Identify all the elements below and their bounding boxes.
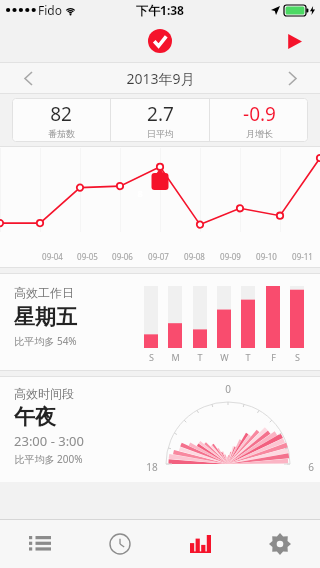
staticText: S — [295, 351, 300, 363]
button[interactable]: Pomodoro — [140, 21, 180, 61]
button[interactable]: Statistics — [160, 519, 240, 568]
staticText: F — [271, 351, 276, 363]
staticText: 09-11 — [292, 251, 313, 262]
staticText: 番茄数 — [48, 128, 75, 139]
staticText: 09-08 — [184, 251, 205, 262]
button[interactable]: List — [0, 519, 80, 568]
button[interactable]: 高效时间段 — [0, 376, 320, 482]
staticText: W — [220, 351, 229, 363]
staticText: 09-06 — [112, 251, 133, 262]
button[interactable]: 82 — [12, 98, 110, 142]
staticText: S — [149, 351, 154, 363]
staticText: 09-04 — [42, 251, 63, 262]
button[interactable]: Settings — [240, 519, 320, 568]
staticText: 09-09 — [220, 251, 241, 262]
button[interactable]: Start — [274, 21, 314, 61]
staticText: 2013年9月 — [126, 69, 195, 88]
staticText: T — [245, 351, 251, 363]
button[interactable]: -0.9 — [210, 98, 308, 142]
staticText: 高效时间段 — [14, 386, 74, 401]
button[interactable]: 2.7 — [111, 98, 209, 142]
staticText: 09-10 — [256, 251, 277, 262]
staticText: M — [171, 351, 180, 363]
staticText: 月增长 — [246, 128, 273, 139]
staticText: 星期五 — [14, 304, 77, 330]
button[interactable]: Timeline — [80, 519, 160, 568]
staticText: 0 — [225, 382, 231, 396]
staticText: -0.9 — [243, 101, 276, 127]
staticText: 6 — [308, 460, 314, 474]
staticText: 比平均多 200% — [14, 452, 83, 466]
staticText: T — [197, 351, 203, 363]
button[interactable]: Previous month — [0, 62, 56, 94]
button[interactable]: 高效工作日 — [0, 273, 320, 371]
staticText: Fido — [38, 2, 62, 18]
button[interactable]: Next month — [264, 62, 320, 94]
staticText: 2.7 — [147, 101, 174, 127]
button[interactable]: 8 — [0, 146, 320, 268]
staticText: 09-07 — [148, 251, 169, 262]
staticText: 高效工作日 — [14, 285, 74, 300]
staticText: 82 — [50, 101, 72, 127]
staticText: 午夜 — [14, 404, 56, 430]
staticText: 日平均 — [147, 128, 174, 139]
staticText: 比平均多 54% — [14, 334, 77, 348]
staticText: 下午1:38 — [136, 2, 184, 18]
staticText: 23:00 - 3:00 — [14, 432, 84, 450]
staticText: 09-05 — [77, 251, 98, 262]
staticText: 18 — [146, 460, 158, 474]
